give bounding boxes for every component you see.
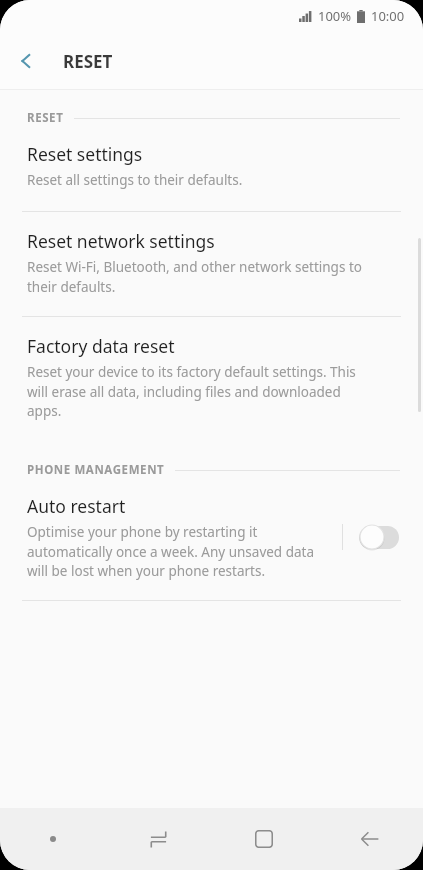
staticText: RESET (63, 50, 113, 73)
button[interactable]: Reset settings (0, 126, 423, 211)
staticText: PHONE MANAGEMENT (27, 462, 165, 478)
button[interactable]: Auto restart (0, 478, 423, 600)
staticText: Reset all settings to their defaults. (27, 171, 243, 189)
staticText: Optimise your phone by restarting it aut… (27, 523, 326, 580)
staticText: Reset settings (27, 142, 143, 166)
button[interactable]: Home (211, 808, 317, 870)
staticText: Reset your device to its factory default… (27, 363, 371, 420)
button[interactable]: Back (317, 808, 423, 870)
staticText: Factory data reset (27, 334, 175, 358)
button[interactable]: Factory data reset (0, 317, 423, 442)
staticText: 100% (318, 7, 352, 25)
button[interactable]: Back (0, 35, 52, 87)
button[interactable]: Recents (105, 808, 211, 870)
staticText: Auto restart (27, 494, 126, 518)
staticText: Reset network settings (27, 229, 215, 253)
staticText: 10:00 (371, 7, 405, 25)
button[interactable]: Reset network settings (0, 212, 423, 316)
staticText: RESET (27, 110, 64, 126)
staticText: Reset Wi-Fi, Bluetooth, and other networ… (27, 258, 371, 296)
button[interactable]: Auto restart toggle (359, 524, 401, 550)
